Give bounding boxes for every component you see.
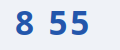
staticText: 8 55: [15, 0, 89, 44]
button[interactable]: 8 55: [0, 0, 120, 50]
